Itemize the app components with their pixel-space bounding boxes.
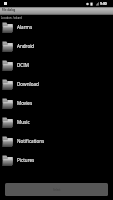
- staticText: Movies: [17, 100, 33, 106]
- staticText: Download: [17, 81, 39, 87]
- button[interactable]: Download: [0, 75, 113, 94]
- button[interactable]: Movies: [0, 94, 113, 113]
- staticText: 9:00: [100, 1, 107, 6]
- button[interactable]: Alarms: [0, 18, 113, 37]
- staticText: Location: /sdcard: [1, 16, 22, 20]
- staticText: Pictures: [17, 157, 35, 163]
- staticText: File dialog: [2, 8, 16, 12]
- button[interactable]: Notifications: [0, 132, 113, 151]
- staticText: Alarms: [17, 24, 33, 30]
- button[interactable]: Music: [0, 113, 113, 132]
- staticText: Android: [17, 43, 35, 49]
- button[interactable]: Android: [0, 37, 113, 56]
- staticText: Notifications: [17, 138, 45, 144]
- staticText: Music: [17, 119, 30, 125]
- staticText: DCIM: [17, 62, 29, 68]
- button[interactable]: DCIM: [0, 56, 113, 75]
- staticText: Select: [53, 188, 61, 192]
- button[interactable]: Pictures: [0, 151, 113, 170]
